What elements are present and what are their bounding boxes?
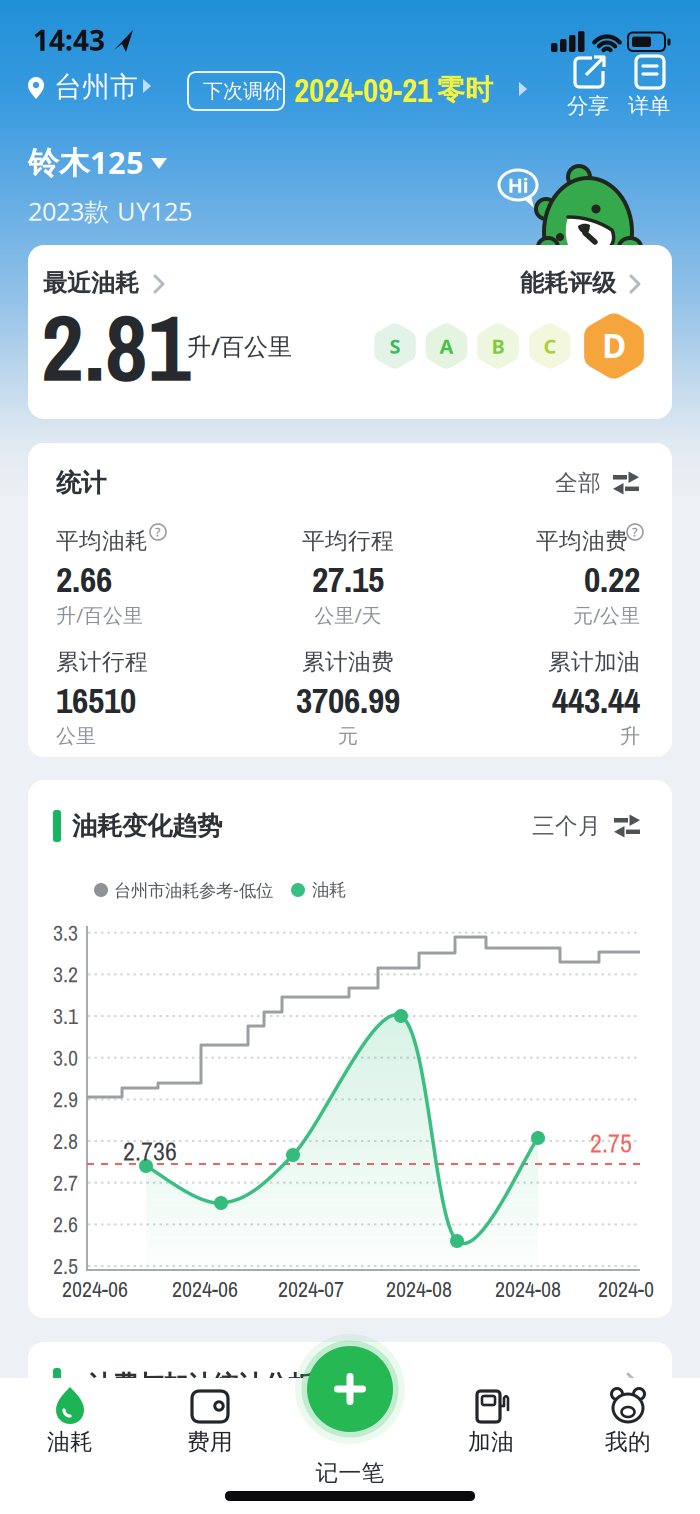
button[interactable]: 我的: [578, 1380, 678, 1456]
staticText: 升/百公里: [187, 330, 292, 362]
staticText: 油耗: [312, 879, 346, 901]
button[interactable]: 最近油耗: [36, 262, 176, 304]
staticText: 分享: [567, 93, 609, 119]
staticText: 加油: [468, 1428, 514, 1456]
button[interactable]: 下次调价: [187, 64, 535, 112]
staticText: 2024-07: [278, 1274, 344, 1304]
staticText: 2.81: [41, 284, 191, 410]
button[interactable]: 费用: [160, 1380, 260, 1456]
staticText: ?: [632, 524, 638, 540]
staticText: 2024-0: [598, 1274, 654, 1304]
button[interactable]: 说明: [149, 523, 167, 541]
staticText: 公里/天: [314, 602, 381, 628]
staticText: 443.44: [552, 676, 640, 724]
staticText: 2.5: [53, 1251, 78, 1281]
button[interactable]: 说明: [626, 523, 644, 541]
staticText: 3.2: [53, 960, 78, 989]
staticText: 3706.99: [296, 676, 400, 724]
staticText: 元/公里: [573, 602, 640, 628]
staticText: 统计: [56, 467, 106, 498]
staticText: 公里: [56, 724, 96, 748]
button[interactable]: 油费与加油统计分析: [40, 1350, 660, 1398]
staticText: 2024-06: [62, 1274, 128, 1304]
staticText: 2023款 UY125: [28, 194, 192, 228]
staticText: 升/百公里: [56, 602, 143, 628]
staticText: 累计油费: [302, 648, 394, 676]
staticText: ?: [155, 524, 161, 540]
staticText: 2.8: [53, 1126, 78, 1156]
staticText: 详单: [628, 93, 670, 119]
staticText: 油费与加油统计分析: [88, 1369, 313, 1400]
staticText: C: [543, 333, 556, 359]
button[interactable]: 详单: [623, 50, 677, 122]
staticText: 三个月: [532, 812, 601, 840]
button[interactable]: 能耗评级: [512, 262, 652, 304]
staticText: B: [491, 333, 504, 359]
button[interactable]: 记一笔: [292, 1332, 408, 1486]
button[interactable]: 油耗: [20, 1380, 120, 1456]
staticText: 2024-06: [172, 1274, 238, 1304]
staticText: 台州市: [54, 70, 138, 104]
staticText: 累计加油: [548, 648, 640, 676]
staticText: 升: [620, 724, 640, 748]
staticText: 16510: [56, 676, 136, 724]
staticText: 全部: [555, 469, 601, 497]
staticText: 0.22: [584, 555, 640, 603]
staticText: 铃木125: [28, 142, 144, 182]
staticText: 2.6: [53, 1210, 78, 1239]
staticText: D: [602, 323, 626, 367]
button[interactable]: 分享: [562, 50, 616, 122]
staticText: 台州市油耗参考-低位: [114, 878, 273, 901]
staticText: 2024-08: [495, 1274, 561, 1304]
staticText: 3.0: [53, 1043, 78, 1072]
staticText: 2.736: [123, 1133, 177, 1168]
staticText: Hi: [507, 172, 528, 198]
staticText: 3.3: [53, 918, 78, 947]
button[interactable]: 三个月: [524, 806, 648, 848]
staticText: 元: [338, 724, 358, 748]
staticText: 3.1: [53, 1001, 78, 1031]
button[interactable]: 铃木125: [24, 140, 190, 186]
staticText: S: [389, 333, 400, 359]
staticText: 累计行程: [56, 648, 148, 676]
staticText: 2024-09-21: [294, 68, 432, 112]
staticText: 能耗评级: [520, 268, 616, 298]
staticText: 零时: [437, 73, 493, 107]
staticText: 14:43: [33, 21, 105, 59]
staticText: 2.75: [590, 1125, 632, 1160]
staticText: 27.15: [312, 555, 384, 603]
staticText: 我的: [605, 1428, 651, 1456]
staticText: 油耗: [47, 1428, 93, 1456]
button[interactable]: 加油: [441, 1380, 541, 1456]
staticText: 2.9: [53, 1085, 78, 1114]
staticText: 2.7: [53, 1168, 78, 1197]
staticText: 最近油耗: [43, 268, 139, 298]
staticText: 平均行程: [302, 527, 394, 555]
staticText: 平均油耗: [56, 527, 148, 555]
staticText: 费用: [187, 1428, 233, 1456]
button[interactable]: 全部: [548, 462, 648, 504]
staticText: 2024-08: [386, 1274, 452, 1304]
staticText: 2.66: [56, 555, 112, 603]
button[interactable]: 台州市: [24, 62, 160, 112]
staticText: 油耗变化趋势: [72, 810, 222, 841]
staticText: A: [439, 333, 453, 359]
staticText: 平均油费: [536, 527, 628, 555]
staticText: 下次调价: [203, 79, 283, 103]
staticText: 记一笔: [315, 1459, 384, 1487]
